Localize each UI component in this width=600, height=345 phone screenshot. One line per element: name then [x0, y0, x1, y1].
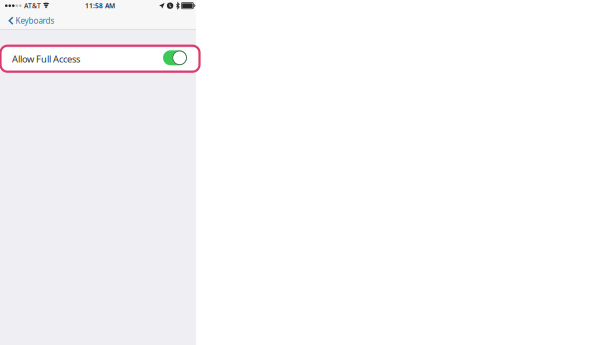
staticText: AT&T [24, 1, 41, 10]
button[interactable]: Allow Full Access [0, 48, 196, 70]
staticText: 11:58 AM [85, 1, 115, 10]
staticText: Keyboards [15, 15, 54, 26]
staticText: Allow Full Access [12, 53, 80, 65]
button[interactable]: Keyboards [0, 13, 60, 30]
